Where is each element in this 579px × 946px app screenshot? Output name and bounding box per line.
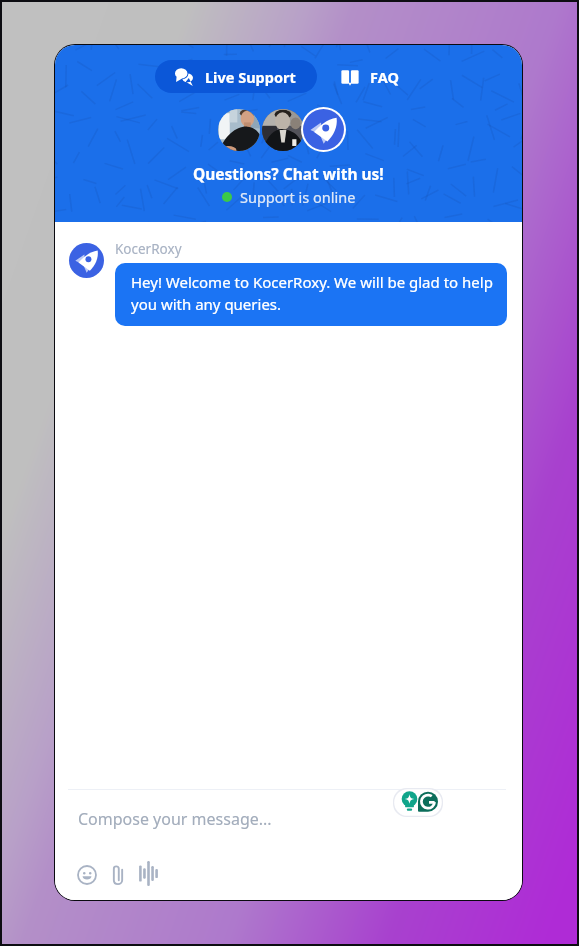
button[interactable]: Attach file [105,862,131,888]
staticText: Questions? Chat with us! [193,163,384,184]
button[interactable]: FAQ [337,60,403,93]
staticText: FAQ [370,67,399,87]
button[interactable]: Live Support [155,60,317,93]
button[interactable]: Emoji [74,862,100,888]
staticText: Live Support [205,67,296,87]
staticText: Hey! Welcome to KocerRoxy. We will be gl… [131,272,495,315]
staticText: Compose your message... [78,808,272,830]
button[interactable]: Voice message [135,860,162,887]
staticText: KocerRoxy [115,240,182,258]
staticText: Support is online [240,187,356,207]
